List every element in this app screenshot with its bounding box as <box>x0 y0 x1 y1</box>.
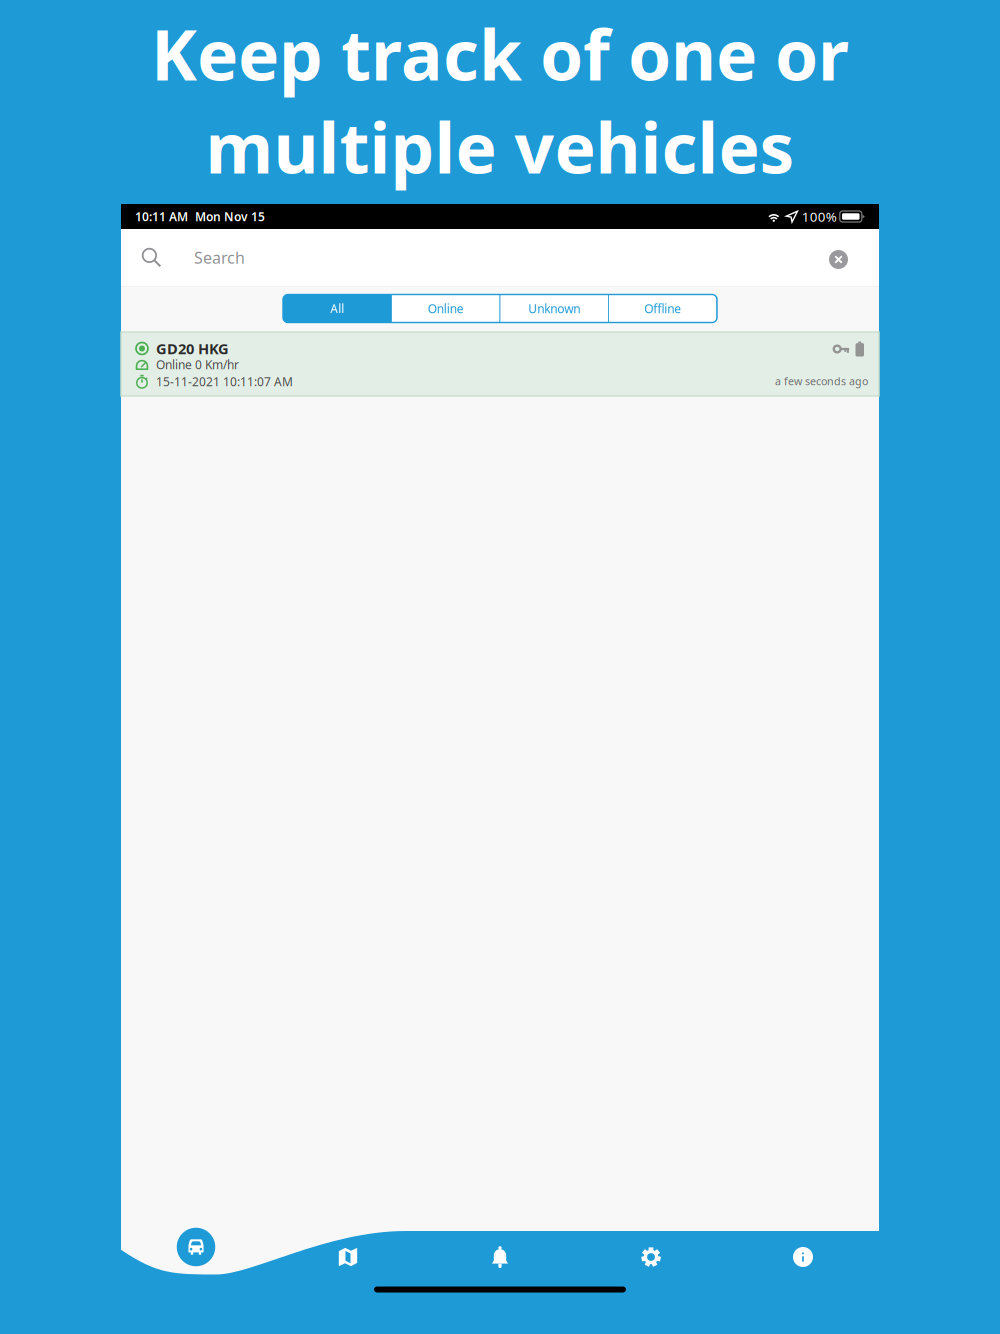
button[interactable]: Offline <box>608 294 717 322</box>
staticText: a few seconds ago <box>775 374 868 388</box>
button[interactable]: Clear search <box>829 250 848 269</box>
staticText: Online <box>428 300 464 316</box>
button[interactable]: Unknown <box>500 294 608 322</box>
staticText: Mon Nov 15 <box>195 208 265 224</box>
button[interactable]: Map <box>326 1235 370 1279</box>
button[interactable]: Info <box>781 1235 825 1279</box>
staticText: Unknown <box>528 300 580 316</box>
button[interactable]: Online <box>391 294 500 322</box>
staticText: Keep track of one or <box>151 7 849 100</box>
staticText: 100% <box>802 208 837 225</box>
staticText: Offline <box>644 300 681 316</box>
staticText: Search <box>194 247 245 268</box>
button[interactable]: GD20 HKG <box>121 332 879 396</box>
staticText: 10:11 AM <box>135 208 188 224</box>
staticText: GD20 HKG <box>156 339 229 358</box>
staticText: Online 0 Km/hr <box>156 356 239 372</box>
staticText: 15-11-2021 10:11:07 AM <box>156 373 293 389</box>
staticText: All <box>330 300 344 316</box>
staticText: multiple vehicles <box>205 100 794 193</box>
button[interactable]: Settings <box>629 1235 673 1279</box>
button[interactable]: Notifications <box>478 1235 522 1279</box>
button[interactable]: Vehicles <box>172 1223 220 1271</box>
button[interactable]: All <box>283 294 391 322</box>
